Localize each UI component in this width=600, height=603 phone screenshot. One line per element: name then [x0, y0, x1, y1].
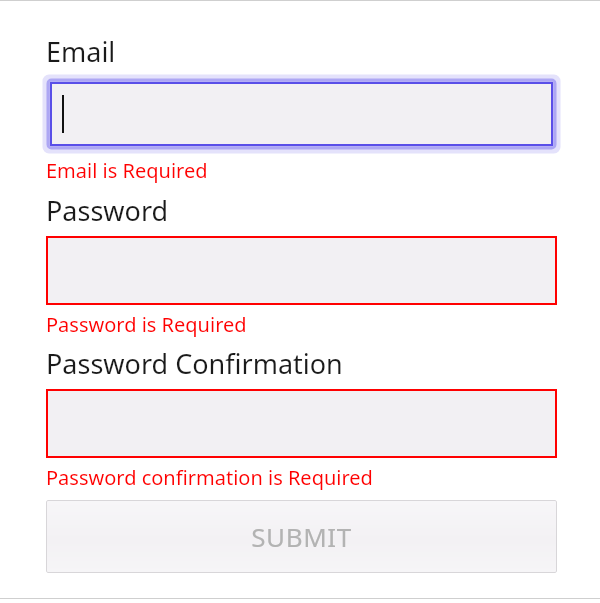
staticText: Email	[46, 33, 116, 70]
button[interactable]: Email input field	[46, 78, 557, 150]
button[interactable]: Password input field	[46, 389, 557, 458]
staticText: Email is Required	[46, 157, 208, 184]
staticText: Password is Required	[46, 311, 247, 338]
staticText: Password Confirmation	[46, 345, 343, 382]
staticText: SUBMIT	[251, 519, 352, 554]
staticText: Password confirmation is Required	[46, 464, 373, 491]
button[interactable]: Password input field	[46, 236, 557, 305]
staticText: Password	[46, 192, 169, 229]
button[interactable]: SUBMIT	[46, 500, 557, 573]
